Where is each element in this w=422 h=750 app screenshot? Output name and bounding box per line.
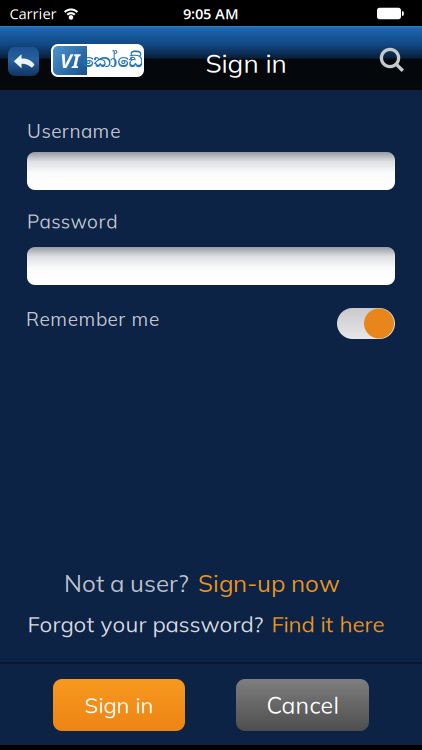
button[interactable]	[337, 308, 395, 339]
button[interactable]: Find it here	[271, 610, 384, 638]
button[interactable]	[373, 44, 407, 78]
staticText: Sign in	[205, 47, 286, 79]
button[interactable]: Sign in	[53, 679, 185, 731]
button[interactable]	[27, 152, 395, 190]
staticText: Carrier	[9, 4, 56, 23]
button[interactable]: VI	[51, 44, 144, 77]
staticText: 9:05 AM	[183, 4, 239, 23]
staticText: VI	[60, 47, 80, 74]
staticText: Sign-up now	[198, 568, 340, 598]
button[interactable]: Cancel	[236, 679, 369, 731]
staticText: කෝඩේ	[82, 50, 143, 72]
button[interactable]: Sign-up now	[198, 568, 340, 598]
button[interactable]	[27, 247, 395, 285]
staticText: Cancel	[266, 690, 338, 719]
staticText: Remember me	[26, 307, 159, 331]
button[interactable]	[8, 47, 39, 76]
staticText: Username	[27, 119, 120, 143]
staticText: Sign in	[84, 691, 153, 719]
staticText: Not a user?	[64, 568, 189, 598]
staticText: Password	[27, 209, 117, 233]
staticText: Find it here	[271, 610, 384, 638]
staticText: Forgot your password?	[27, 610, 263, 638]
